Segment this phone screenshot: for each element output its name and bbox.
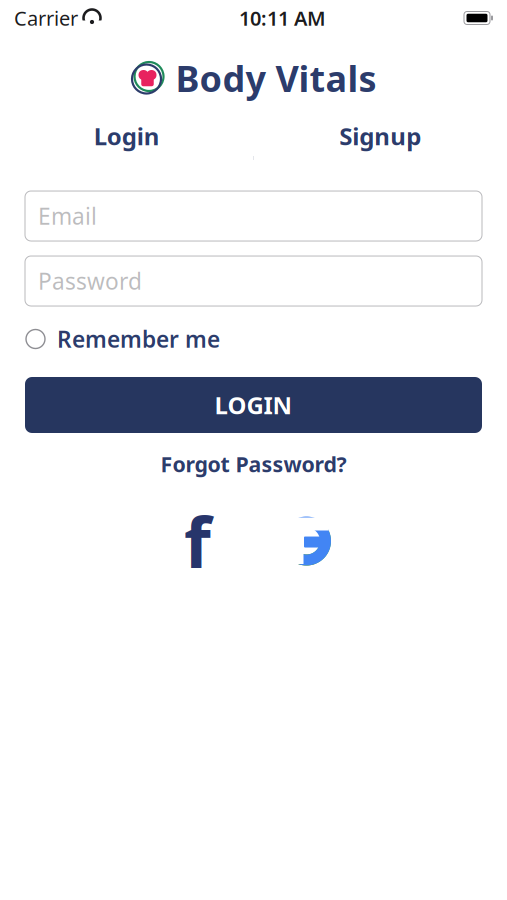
button[interactable]: Remember me bbox=[26, 324, 481, 354]
button[interactable]: Sign in with Google bbox=[281, 516, 331, 566]
staticText: Carrier bbox=[14, 5, 78, 31]
staticText: Forgot Password? bbox=[160, 450, 346, 478]
button[interactable]: Forgot Password? bbox=[160, 451, 346, 477]
button[interactable]: Sign in with Facebook bbox=[175, 513, 219, 569]
staticText: Email bbox=[38, 201, 97, 231]
staticText: Remember me bbox=[57, 324, 220, 354]
staticText: LOGIN bbox=[214, 389, 292, 421]
button[interactable]: Login bbox=[0, 116, 253, 156]
button[interactable]: LOGIN bbox=[25, 377, 482, 433]
staticText: Password bbox=[38, 266, 142, 296]
staticText: 10:11 AM bbox=[239, 5, 326, 31]
staticText: Login bbox=[94, 120, 160, 152]
staticText: Signup bbox=[339, 120, 421, 152]
staticText: f bbox=[184, 495, 211, 587]
button[interactable]: Signup bbox=[253, 116, 507, 156]
staticText: Body Vitals bbox=[175, 54, 376, 102]
